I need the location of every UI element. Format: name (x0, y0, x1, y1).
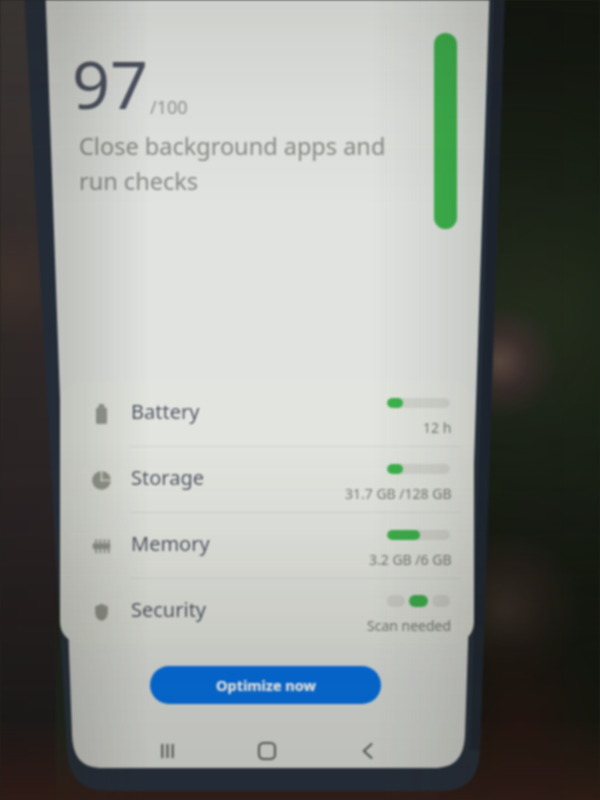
button[interactable]: Battery (60, 381, 474, 446)
staticText: Battery (131, 398, 200, 425)
staticText: Optimize now (216, 675, 316, 695)
staticText: 12 h (423, 418, 452, 437)
staticText: Scan needed (367, 616, 452, 635)
staticText: 3.2 GB /6 GB (369, 550, 452, 569)
button[interactable]: Back (351, 735, 383, 767)
button[interactable]: Security (60, 579, 474, 644)
staticText: 97 (72, 40, 149, 129)
staticText: Close background apps and run checks (79, 130, 386, 197)
staticText: Storage (131, 464, 204, 491)
button[interactable]: Optimize now (150, 666, 381, 704)
button[interactable]: Memory (60, 513, 474, 578)
button[interactable]: Recent apps (151, 735, 183, 767)
button[interactable]: Home (251, 735, 283, 767)
staticText: 31.7 GB /128 GB (345, 484, 452, 503)
staticText: Security (131, 596, 207, 623)
staticText: /100 (150, 95, 188, 120)
button[interactable]: Storage (60, 447, 474, 512)
staticText: Memory (131, 530, 210, 557)
